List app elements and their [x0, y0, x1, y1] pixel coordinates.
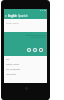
staticText: ver	[6, 58, 10, 61]
staticText: consultar	[6, 73, 17, 76]
button[interactable]: Copy	[27, 48, 31, 52]
staticText: visitar, mirar	[6, 63, 20, 66]
button[interactable]: Home	[25, 87, 28, 90]
staticText: Enter Word	[6, 21, 19, 24]
button[interactable]: visitar, mirar	[4, 62, 47, 67]
button[interactable]: ver	[4, 57, 47, 62]
button[interactable]: ver, entender	[4, 67, 47, 72]
staticText: Spanish	[18, 14, 28, 18]
staticText: English	[8, 14, 17, 18]
staticText: ver, entender	[6, 68, 21, 71]
button[interactable]: consultar	[4, 72, 47, 77]
button[interactable]: Back	[4, 13, 8, 19]
button[interactable]: Share	[33, 48, 37, 52]
button[interactable]: More	[39, 48, 43, 52]
